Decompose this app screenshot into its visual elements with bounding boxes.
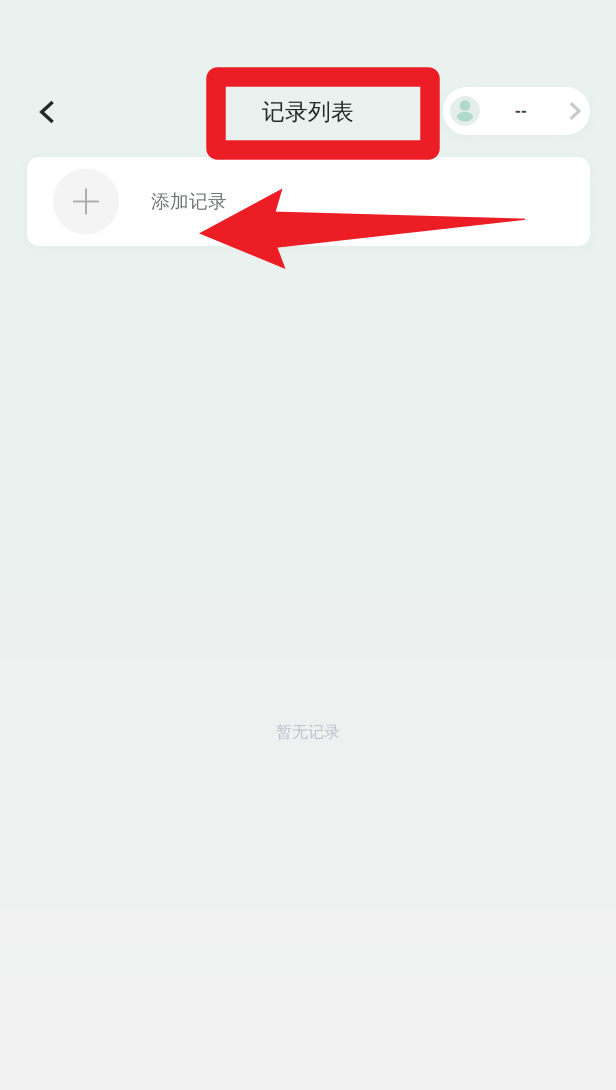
staticText: 添加记录 bbox=[151, 190, 227, 213]
button[interactable]: 切换账号 bbox=[443, 87, 590, 135]
staticText: 记录列表 bbox=[262, 98, 354, 126]
staticText: -- bbox=[515, 98, 527, 121]
staticText: 暂无记录 bbox=[276, 722, 340, 742]
button[interactable]: 添加记录 bbox=[27, 157, 590, 246]
button[interactable]: Back bbox=[18, 83, 76, 141]
